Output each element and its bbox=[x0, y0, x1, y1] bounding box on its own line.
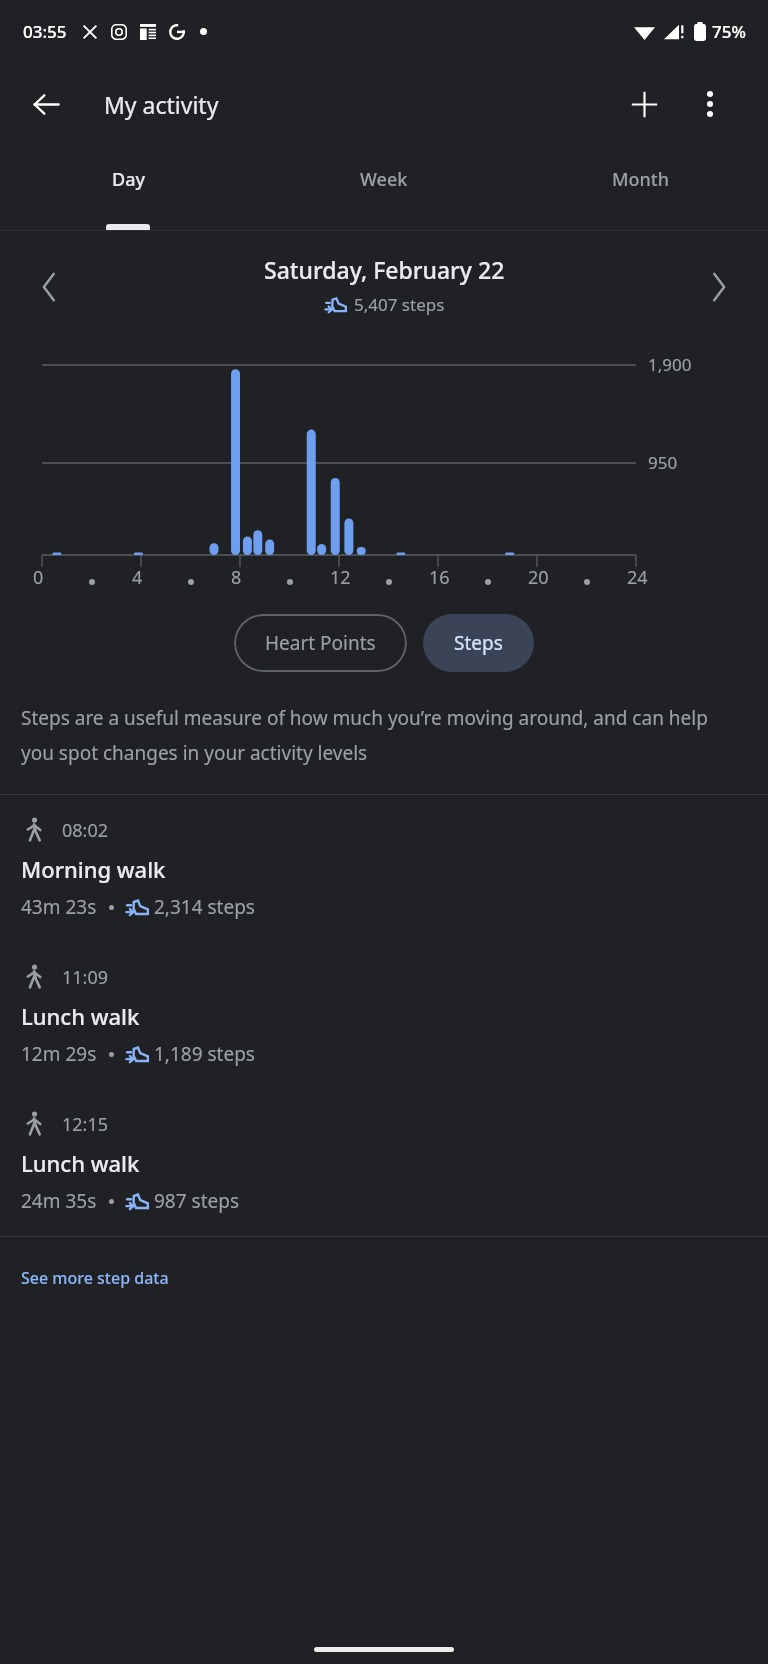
staticText: 987 steps bbox=[154, 1188, 240, 1214]
staticText: 1,900 bbox=[648, 353, 692, 376]
button[interactable]: Add bbox=[620, 80, 668, 128]
button[interactable]: 11:09 bbox=[0, 942, 768, 1089]
button[interactable]: Month bbox=[512, 146, 768, 230]
staticText: 08:02 bbox=[62, 818, 109, 843]
staticText: Saturday, February 22 bbox=[264, 254, 505, 285]
staticText: 20 bbox=[528, 565, 549, 590]
button[interactable]: More options bbox=[686, 80, 734, 128]
staticText: 75% bbox=[712, 20, 746, 43]
staticText: Heart Points bbox=[265, 630, 376, 656]
staticText: Lunch walk bbox=[21, 1001, 140, 1031]
staticText: 16 bbox=[429, 565, 450, 590]
staticText: 4 bbox=[132, 565, 143, 590]
staticText: 12:15 bbox=[62, 1112, 109, 1137]
staticText: Morning walk bbox=[21, 854, 166, 884]
staticText: 2,314 steps bbox=[154, 894, 255, 920]
staticText: Lunch walk bbox=[21, 1148, 140, 1178]
button[interactable]: Next day bbox=[692, 260, 746, 314]
button[interactable]: See more step data bbox=[0, 1237, 768, 1317]
staticText: Day bbox=[112, 167, 145, 192]
button[interactable]: Back bbox=[22, 80, 70, 128]
button[interactable]: Heart Points bbox=[234, 614, 407, 672]
staticText: 1,189 steps bbox=[154, 1041, 255, 1067]
staticText: 950 bbox=[648, 451, 678, 474]
staticText: 12 bbox=[330, 565, 351, 590]
staticText: Steps bbox=[454, 630, 503, 656]
button[interactable]: Steps bbox=[423, 614, 534, 672]
staticText: 5,407 steps bbox=[354, 293, 445, 316]
staticText: Week bbox=[360, 167, 408, 192]
staticText: 24m 35s bbox=[21, 1188, 97, 1214]
staticText: 24 bbox=[627, 565, 648, 590]
staticText: See more step data bbox=[21, 1267, 169, 1289]
staticText: 0 bbox=[33, 565, 44, 590]
staticText: 8 bbox=[231, 565, 242, 590]
button[interactable]: 08:02 bbox=[0, 795, 768, 942]
staticText: 12m 29s bbox=[21, 1041, 97, 1067]
staticText: 43m 23s bbox=[21, 894, 97, 920]
button[interactable]: 12:15 bbox=[0, 1089, 768, 1236]
staticText: 03:55 bbox=[23, 20, 67, 43]
staticText: 11:09 bbox=[62, 965, 109, 990]
button[interactable]: Day bbox=[0, 146, 256, 230]
button[interactable]: Previous day bbox=[22, 260, 76, 314]
staticText: Month bbox=[612, 167, 669, 192]
button[interactable]: Week bbox=[256, 146, 512, 230]
staticText: My activity bbox=[104, 89, 219, 120]
staticText: Steps are a useful measure of how much y… bbox=[21, 705, 716, 766]
